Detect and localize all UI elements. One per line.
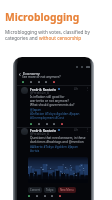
staticText: @FredrikLin_kl [30,132,50,136]
button[interactable]: Post actions [28,194,61,198]
staticText: categories and [5,35,39,41]
staticText: Concert [30,188,40,192]
staticText: Questions that need answers, in these da… [30,136,86,144]
button[interactable]: Post actions [30,122,63,126]
staticText: #Inflation #Tokyo #golden #Japan #Unempl… [30,112,80,120]
staticText: Tokyo [46,188,54,192]
button[interactable]: Tokyo [44,187,56,193]
staticText: @FredrikLin_kl [30,91,50,95]
staticText: @Japan [30,108,41,112]
staticText: Economy [23,71,40,76]
staticText: 4 h [74,87,78,91]
staticText: Fredrik Rantzén [30,128,57,132]
staticText: See more or not anymore? [22,75,61,79]
staticText: Microblogging with votes, classified by [5,29,90,35]
button[interactable]: New Menu [58,187,76,193]
button[interactable]: ⋮ [85,127,89,132]
staticText: Microblogging [5,10,80,24]
staticText: Fredrik Rantzén [30,87,57,91]
button[interactable]: Back [19,70,40,77]
staticText: Is inflation still good for war tertio o… [30,95,75,107]
staticText: New Menu [60,188,74,192]
button[interactable]: Concert [28,187,42,193]
button[interactable]: Post actions [22,80,55,84]
staticText: #Alberto #Tokyo #golden #Japan #crisis [30,145,78,153]
button[interactable]: ⋮ [85,86,89,91]
staticText: ‹ [19,70,21,77]
staticText: 4 h [74,128,78,132]
staticText: without censorship [39,35,82,41]
